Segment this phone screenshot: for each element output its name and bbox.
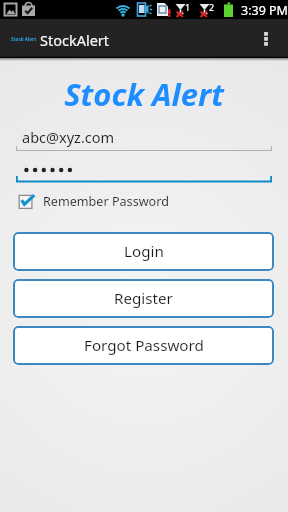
button[interactable]: Register [13, 279, 274, 318]
staticText: Stock Alert [0, 73, 288, 115]
staticText: 1 [185, 1, 191, 13]
staticText: 3:39 PM [241, 2, 288, 19]
staticText: Login [124, 241, 164, 262]
staticText: Register [114, 288, 173, 309]
staticText: StockAlert [40, 30, 110, 50]
button[interactable]: Login [13, 232, 274, 271]
staticText: Forgot Password [84, 335, 204, 356]
button[interactable]: Forgot Password [13, 326, 274, 365]
staticText: 2 [209, 1, 215, 13]
button[interactable]: Remember Password [16, 190, 169, 212]
staticText: Stock Alert [11, 36, 37, 42]
button[interactable]: More options [248, 19, 284, 58]
staticText: abc@xyz.com [22, 127, 115, 147]
staticText: Remember Password [43, 193, 169, 210]
